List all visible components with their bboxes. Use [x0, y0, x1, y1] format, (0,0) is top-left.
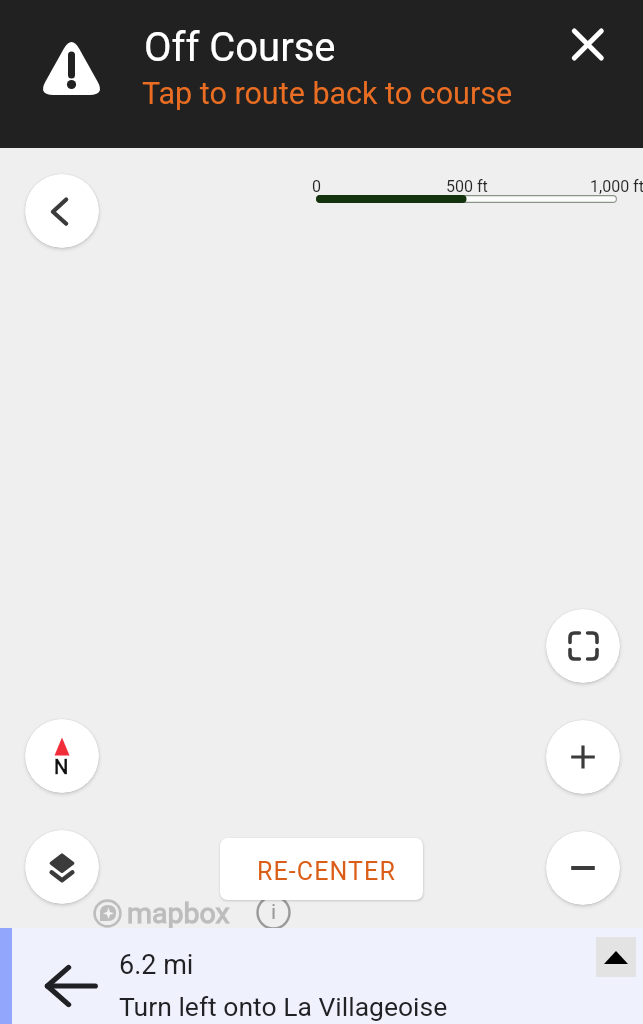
staticText: Tap to route back to course — [142, 76, 513, 112]
button[interactable]: Layers — [25, 830, 99, 904]
staticText: i — [271, 900, 277, 925]
staticText: Off Course — [144, 24, 336, 71]
button[interactable]: Back — [25, 174, 99, 248]
button[interactable]: Zoom in — [546, 720, 620, 794]
staticText: Turn left onto La Villageoise — [119, 991, 448, 1022]
staticText: N — [54, 755, 69, 778]
button[interactable]: Close — [563, 20, 611, 68]
button[interactable]: Off Course — [0, 0, 643, 148]
button[interactable]: Zoom out — [546, 831, 620, 905]
staticText: RE-CENTER — [257, 857, 396, 886]
button[interactable]: Overview — [546, 609, 620, 683]
staticText: mapbox — [127, 897, 230, 930]
staticText: 1,000 ft — [590, 177, 643, 196]
staticText: 6.2 mi — [119, 949, 194, 981]
button[interactable]: Compass — [25, 719, 99, 793]
button[interactable]: Expand — [596, 937, 636, 977]
button[interactable]: RE-CENTER — [220, 838, 423, 900]
staticText: 0 — [312, 177, 321, 196]
staticText: 500 ft — [446, 177, 488, 196]
button[interactable]: 6.2 mi — [0, 928, 643, 1024]
